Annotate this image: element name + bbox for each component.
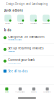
staticText: Payment — [30, 23, 36, 24]
staticText: Categorize 38 transactions — [8, 35, 44, 38]
button[interactable]: Connect your bank — [0, 55, 54, 67]
staticText: Connect your bank — [8, 58, 34, 62]
button[interactable]: Expense — [40, 15, 53, 24]
button[interactable]: Home — [0, 87, 13, 93]
staticText: Estimate — [18, 23, 23, 24]
staticText: Craigs Design and Landscaping — [6, 2, 48, 6]
button[interactable]: Invoice — [1, 15, 14, 24]
staticText: Get started — [8, 50, 15, 52]
staticText: Transactions — [15, 91, 25, 93]
button[interactable]: Estimate — [14, 15, 27, 24]
staticText: See all to-dos — [8, 69, 27, 73]
button[interactable]: Set up recurring invoices — [0, 44, 54, 55]
staticText: Customers — [43, 91, 51, 93]
staticText: Expense — [43, 23, 50, 24]
staticText: Quick actions — [3, 9, 22, 12]
button[interactable]: Categorize 38 transactions — [0, 32, 54, 43]
staticText: Review transactions — [8, 39, 22, 41]
button[interactable]: Transactions — [13, 87, 27, 93]
button[interactable]: Reports — [27, 87, 40, 93]
staticText: Invoice — [5, 23, 10, 24]
button[interactable]: See all to-dos — [0, 67, 54, 75]
button[interactable]: Customers — [40, 87, 54, 93]
staticText: To do — [3, 28, 11, 32]
staticText: Reports — [31, 91, 37, 93]
button[interactable]: Payment — [27, 15, 40, 24]
staticText: Connect account — [8, 62, 20, 64]
staticText: Set up recurring invoices — [8, 46, 43, 50]
staticText: Home — [5, 91, 9, 93]
